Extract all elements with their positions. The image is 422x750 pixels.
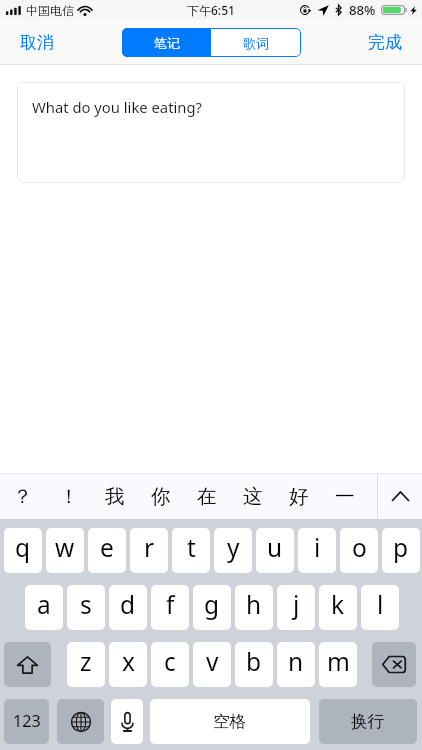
button[interactable]: l [361, 585, 399, 630]
staticText: u [267, 531, 283, 564]
staticText: 好 [289, 484, 309, 509]
button[interactable]: 这 [230, 474, 276, 519]
staticText: 你 [151, 484, 171, 509]
button[interactable]: v [193, 642, 231, 687]
button[interactable]: 换行 [319, 699, 417, 744]
staticText: 完成 [368, 32, 402, 53]
button[interactable]: 一 [322, 474, 368, 519]
staticText: 取消 [20, 32, 54, 53]
button[interactable]: 我 [92, 474, 138, 519]
staticText: e [100, 531, 114, 564]
button[interactable]: y [214, 528, 252, 573]
button[interactable]: Backspace [372, 642, 416, 687]
button[interactable]: 123 [4, 699, 49, 744]
button[interactable]: n [277, 642, 315, 687]
staticText: ？ [13, 484, 33, 509]
button[interactable]: a [25, 585, 63, 630]
staticText: f [166, 588, 175, 621]
staticText: c [164, 645, 176, 678]
button[interactable]: i [298, 528, 336, 573]
staticText: 在 [197, 484, 217, 509]
button[interactable]: t [172, 528, 210, 573]
button[interactable]: What do you like eating? [17, 82, 405, 183]
button[interactable]: 完成 [348, 24, 422, 61]
button[interactable]: p [382, 528, 420, 573]
staticText: o [352, 531, 367, 564]
staticText: h [246, 588, 262, 621]
button[interactable]: 好 [276, 474, 322, 519]
button[interactable]: k [319, 585, 357, 630]
staticText: d [120, 588, 136, 621]
staticText: n [288, 645, 304, 678]
button[interactable]: r [130, 528, 168, 573]
button[interactable]: ！ [46, 474, 92, 519]
staticText: g [204, 588, 220, 621]
staticText: 换行 [351, 711, 385, 732]
button[interactable]: m [319, 642, 357, 687]
staticText: 这 [243, 484, 263, 509]
button[interactable]: c [151, 642, 189, 687]
staticText: w [55, 531, 75, 564]
staticText: i [314, 531, 321, 564]
staticText: v [206, 645, 219, 678]
button[interactable]: 你 [138, 474, 184, 519]
staticText: p [393, 531, 409, 564]
button[interactable]: Switch keyboard [57, 699, 104, 744]
staticText: 空格 [213, 711, 247, 732]
button[interactable]: x [109, 642, 147, 687]
staticText: x [122, 645, 135, 678]
staticText: ！ [59, 484, 79, 509]
button[interactable]: d [109, 585, 147, 630]
button[interactable]: s [67, 585, 105, 630]
staticText: 我 [105, 484, 125, 509]
staticText: 中国电信 [26, 3, 74, 18]
button[interactable]: 歌词 [211, 28, 301, 57]
button[interactable]: 取消 [0, 24, 74, 61]
staticText: What do you like eating? [32, 97, 202, 117]
staticText: z [80, 645, 92, 678]
staticText: 88% [349, 1, 376, 19]
button[interactable]: w [46, 528, 84, 573]
button[interactable]: o [340, 528, 378, 573]
staticText: y [227, 531, 240, 564]
staticText: j [293, 588, 300, 621]
button[interactable]: Shift [4, 642, 51, 687]
button[interactable]: f [151, 585, 189, 630]
staticText: a [37, 588, 51, 621]
button[interactable]: ？ [0, 474, 46, 519]
button[interactable]: u [256, 528, 294, 573]
staticText: k [331, 588, 345, 621]
staticText: t [187, 531, 196, 564]
button[interactable]: e [88, 528, 126, 573]
button[interactable]: 空格 [150, 699, 310, 744]
button[interactable]: b [235, 642, 273, 687]
staticText: s [80, 588, 92, 621]
staticText: 下午6:51 [187, 2, 235, 18]
staticText: m [327, 645, 350, 678]
button[interactable]: j [277, 585, 315, 630]
staticText: 123 [13, 710, 41, 732]
staticText: 笔记 [154, 35, 180, 51]
button[interactable]: g [193, 585, 231, 630]
button[interactable]: q [4, 528, 42, 573]
staticText: b [246, 645, 262, 678]
staticText: r [144, 531, 155, 564]
button[interactable]: Collapse suggestions [378, 474, 422, 519]
staticText: 歌词 [243, 35, 269, 51]
button[interactable]: Dictation [111, 699, 143, 744]
staticText: q [15, 531, 31, 564]
button[interactable]: z [67, 642, 105, 687]
staticText: l [377, 588, 384, 621]
staticText: 一 [335, 484, 355, 509]
button[interactable]: h [235, 585, 273, 630]
button[interactable]: 在 [184, 474, 230, 519]
button[interactable]: 笔记 [122, 28, 211, 57]
